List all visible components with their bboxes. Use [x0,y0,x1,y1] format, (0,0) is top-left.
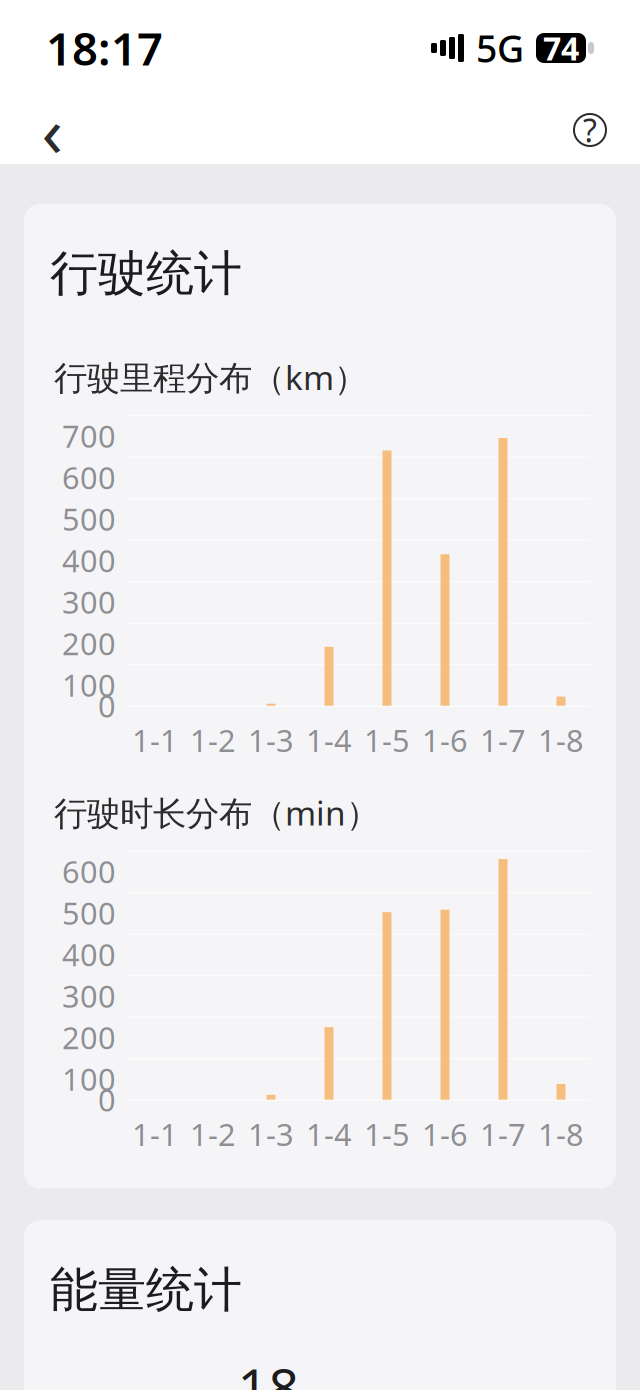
button[interactable]: Back [22,100,82,160]
staticText: 5G [476,23,524,73]
staticText: 400 [62,540,116,581]
staticText: 1-4 [306,720,352,760]
staticText: 能量统计 [50,1260,242,1319]
staticText: 1-5 [364,1114,410,1154]
staticText: ? [583,109,597,151]
staticText: 1-6 [422,1114,468,1154]
staticText: 1-1 [132,720,178,760]
staticText: 700 [62,416,116,456]
staticText: 1-8 [538,1114,584,1154]
staticText: 行驶统计 [50,244,242,303]
staticText: 行驶时长分布（min） [54,790,379,835]
staticText: 600 [62,851,116,892]
staticText: 74 [543,27,579,69]
staticText: 0 [98,685,116,726]
staticText: 500 [62,893,116,933]
staticText: 18:17 [46,18,163,78]
staticText: 1-7 [480,1114,526,1154]
staticText: 500 [62,499,116,539]
staticText: 0 [98,1079,116,1120]
staticText: 1-1 [132,1114,178,1154]
staticText: 100 [62,665,116,705]
staticText: 200 [62,623,116,664]
staticText: 200 [62,1017,116,1058]
staticText: 1-5 [364,720,410,760]
staticText: 300 [62,582,116,622]
staticText: 600 [62,457,116,498]
staticText: 400 [62,934,116,975]
staticText: 行驶里程分布（km） [54,355,367,399]
staticText: 1-2 [190,720,236,760]
staticText: 18.5 [237,1351,313,1390]
staticText: 1-2 [190,1114,236,1154]
staticText: 300 [62,976,116,1016]
staticText: 1-6 [422,720,468,760]
staticText: 1-3 [248,720,294,760]
staticText: 100 [62,1059,116,1099]
staticText: 1-3 [248,1114,294,1154]
button[interactable]: Help [562,102,618,158]
staticText: 1-4 [306,1114,352,1154]
staticText: 1-7 [480,720,526,760]
staticText: 1-8 [538,720,584,760]
staticText: ‹ [41,84,62,176]
